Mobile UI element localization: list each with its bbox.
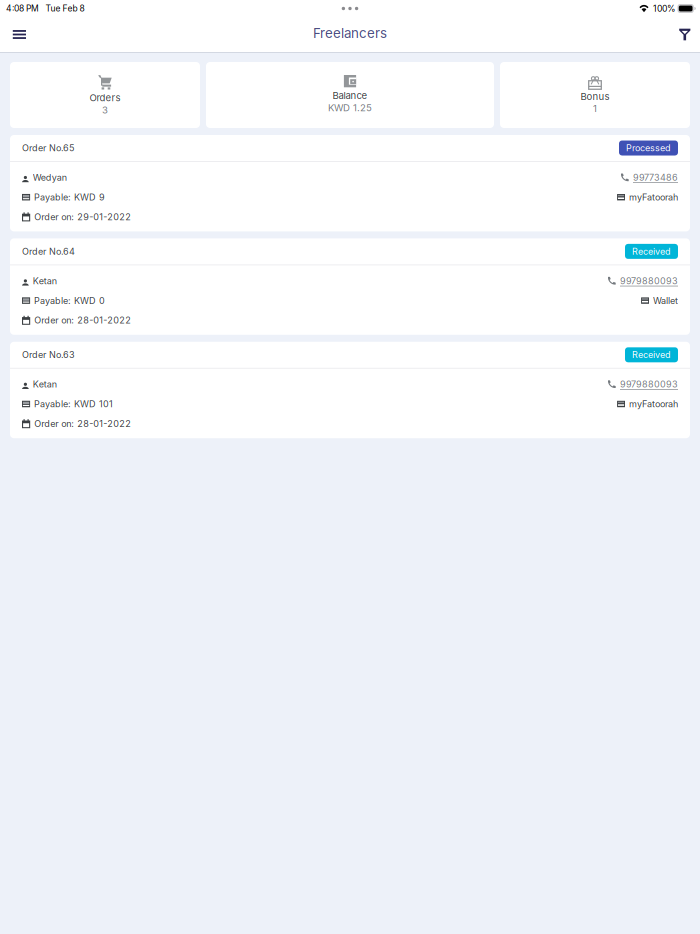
- staticText: 9979880093: [620, 379, 678, 390]
- staticText: Tue Feb 8: [45, 3, 84, 14]
- staticText: 4:08 PM: [6, 3, 39, 14]
- button[interactable]: Balance: [206, 62, 494, 128]
- button[interactable]: Menu: [4, 17, 34, 51]
- staticText: Order No.63: [22, 349, 75, 360]
- staticText: Order No.65: [22, 142, 75, 153]
- staticText: Payable: KWD 9: [34, 192, 105, 203]
- staticText: Processed: [626, 142, 671, 153]
- staticText: Received: [632, 246, 671, 257]
- staticText: Balance: [332, 90, 367, 101]
- staticText: 99773486: [633, 172, 678, 183]
- staticText: Orders: [89, 92, 120, 104]
- staticText: Order on: 29-01-2022: [34, 211, 131, 222]
- staticText: 100%: [653, 3, 676, 14]
- button[interactable]: Order No.65: [10, 135, 690, 231]
- button[interactable]: Order No.64: [10, 238, 690, 335]
- staticText: Ketan: [33, 275, 57, 286]
- staticText: Payable: KWD 101: [34, 398, 113, 409]
- staticText: Payable: KWD 0: [34, 295, 105, 306]
- staticText: Received: [632, 349, 671, 360]
- staticText: myFatoorah: [629, 398, 678, 409]
- staticText: Freelancers: [313, 25, 387, 41]
- staticText: 3: [102, 104, 108, 116]
- button[interactable]: Order No.63: [10, 342, 690, 438]
- staticText: KWD 1.25: [328, 102, 372, 113]
- staticText: Order on: 28-01-2022: [34, 418, 131, 429]
- staticText: 9979880093: [620, 275, 678, 286]
- staticText: Wallet: [653, 295, 678, 306]
- staticText: Order No.64: [22, 246, 75, 257]
- staticText: 1: [593, 103, 597, 114]
- button[interactable]: Filter: [670, 17, 700, 51]
- staticText: myFatoorah: [629, 192, 678, 203]
- staticText: Ketan: [33, 379, 57, 390]
- staticText: Bonus: [580, 91, 609, 102]
- button[interactable]: Orders: [10, 62, 200, 128]
- staticText: Order on: 28-01-2022: [34, 315, 131, 326]
- button[interactable]: Bonus: [500, 62, 690, 128]
- staticText: Wedyan: [33, 172, 67, 183]
